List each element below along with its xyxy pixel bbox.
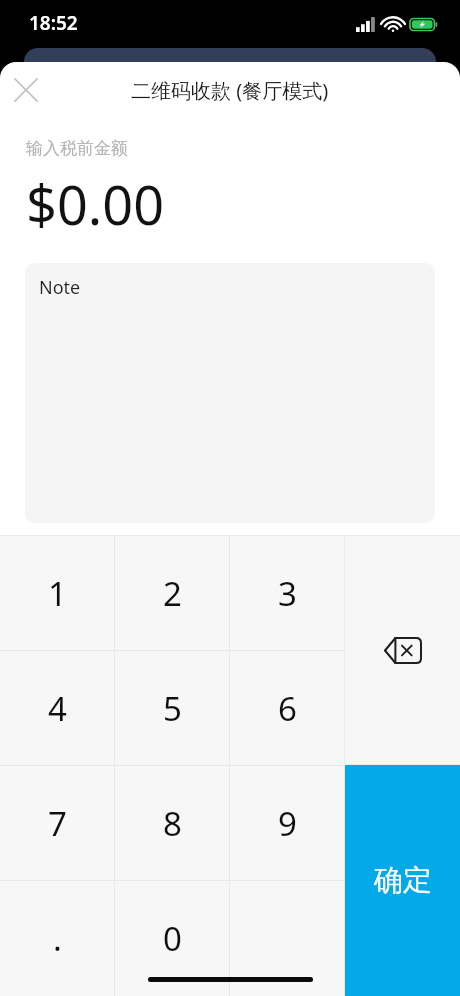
staticText: 1 — [48, 571, 67, 616]
staticText: 18:52 — [29, 10, 78, 36]
button[interactable]: Note — [25, 263, 435, 523]
staticText: 确定 — [374, 862, 432, 899]
staticText: 8 — [163, 801, 182, 846]
staticText: 2 — [163, 571, 182, 616]
staticText: 二维码收款 (餐厅模式) — [131, 77, 329, 104]
staticText: 5 — [163, 686, 182, 731]
button[interactable]: 7 — [0, 766, 115, 881]
button[interactable]: 确定 — [345, 765, 460, 996]
staticText: 7 — [48, 801, 67, 846]
button[interactable] — [230, 881, 345, 996]
staticText: 4 — [48, 686, 67, 731]
staticText: 输入税前金额 — [26, 138, 128, 159]
button[interactable]: 3 — [230, 536, 345, 651]
button[interactable]: 9 — [230, 766, 345, 881]
button[interactable]: 6 — [230, 651, 345, 766]
button[interactable]: Backspace — [345, 535, 460, 765]
staticText: 0 — [163, 916, 182, 961]
staticText: Note — [39, 275, 81, 300]
staticText: 3 — [278, 571, 297, 616]
button[interactable]: Close — [0, 64, 52, 116]
button[interactable]: 5 — [115, 651, 230, 766]
staticText: 9 — [278, 801, 297, 846]
button[interactable]: 1 — [0, 536, 115, 651]
button[interactable]: 0 — [115, 881, 230, 996]
button[interactable]: . — [0, 881, 115, 996]
button[interactable]: 2 — [115, 536, 230, 651]
staticText: $0.00 — [26, 167, 165, 241]
staticText: . — [53, 916, 62, 961]
button[interactable]: 4 — [0, 651, 115, 766]
button[interactable]: 8 — [115, 766, 230, 881]
staticText: 6 — [278, 686, 297, 731]
